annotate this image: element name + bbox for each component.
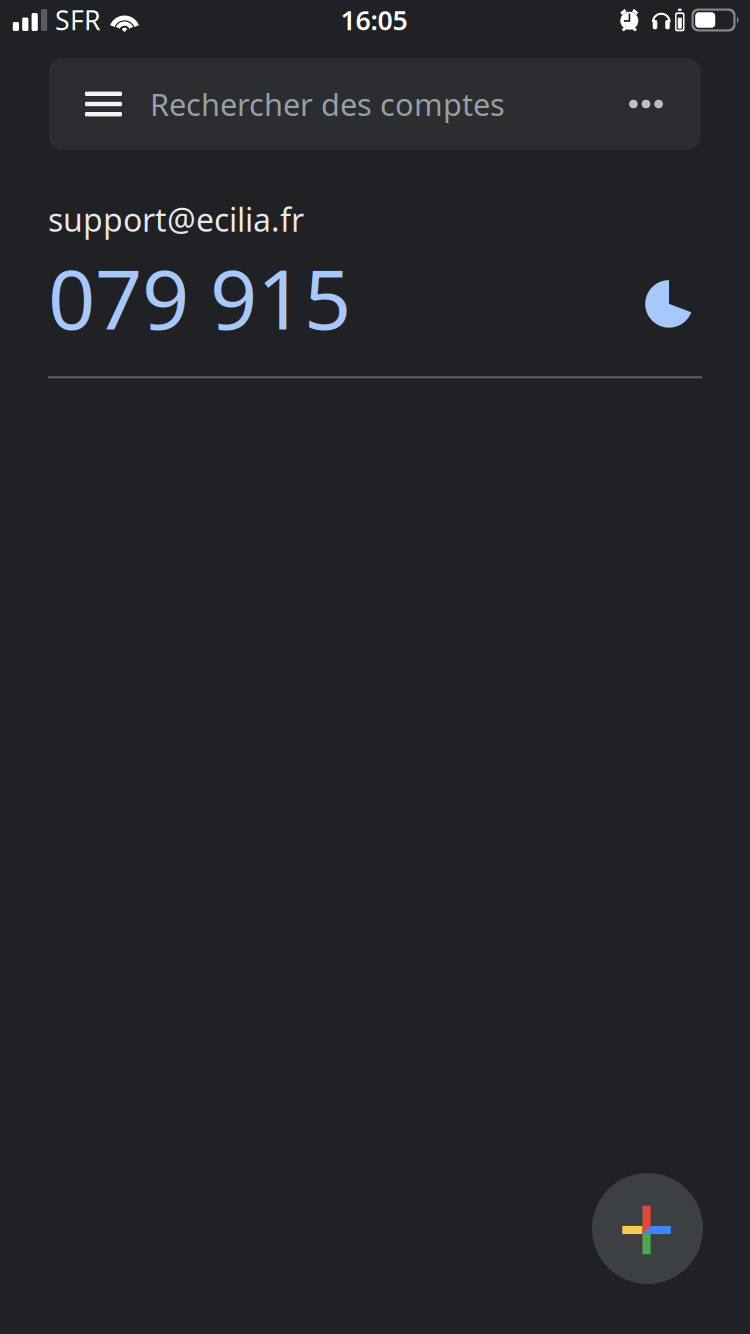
button[interactable]: Add account <box>592 1173 703 1284</box>
staticText: support@ecilia.fr <box>48 198 304 240</box>
button[interactable]: More options <box>610 58 682 150</box>
button[interactable]: Menu <box>67 58 140 150</box>
staticText: Rechercher des comptes <box>150 84 505 124</box>
staticText: SFR <box>55 2 101 38</box>
staticText: 16:05 <box>340 2 407 38</box>
button[interactable]: support@ecilia.fr <box>0 198 750 378</box>
staticText: 079 915 <box>48 242 351 352</box>
